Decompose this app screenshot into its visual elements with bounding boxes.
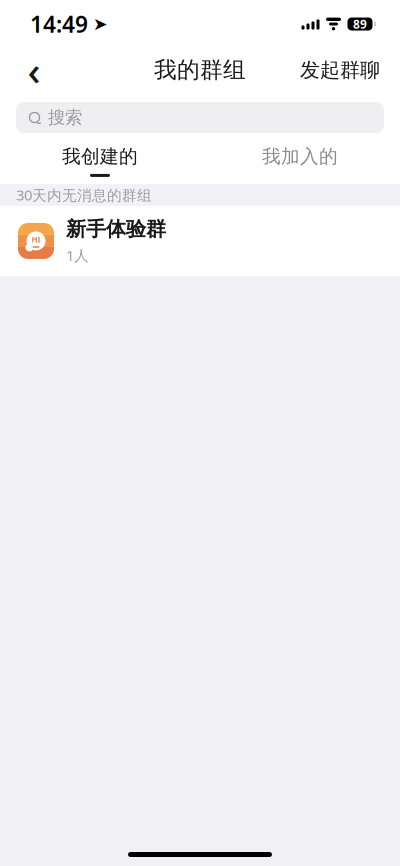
staticText: 我加入的: [262, 145, 338, 168]
staticText: 搜索: [48, 107, 82, 128]
staticText: 我的群组: [154, 56, 246, 84]
staticText: 14:49: [30, 9, 88, 39]
button[interactable]: 搜索: [0, 92, 400, 145]
staticText: ‹: [27, 43, 40, 96]
staticText: 发起群聊: [300, 58, 380, 82]
staticText: ➤: [93, 14, 108, 34]
button[interactable]: 我创建的: [0, 145, 200, 184]
staticText: HI: [31, 234, 40, 245]
staticText: 30天内无消息的群组: [16, 185, 152, 205]
button[interactable]: 发起群聊: [292, 48, 388, 92]
staticText: 1人: [66, 245, 89, 265]
staticText: 89: [353, 16, 367, 32]
staticText: 我创建的: [62, 145, 138, 168]
button[interactable]: 我加入的: [200, 145, 400, 184]
button[interactable]: HI: [0, 206, 400, 276]
button[interactable]: 返回: [12, 48, 56, 92]
staticText: 新手体验群: [66, 217, 166, 241]
